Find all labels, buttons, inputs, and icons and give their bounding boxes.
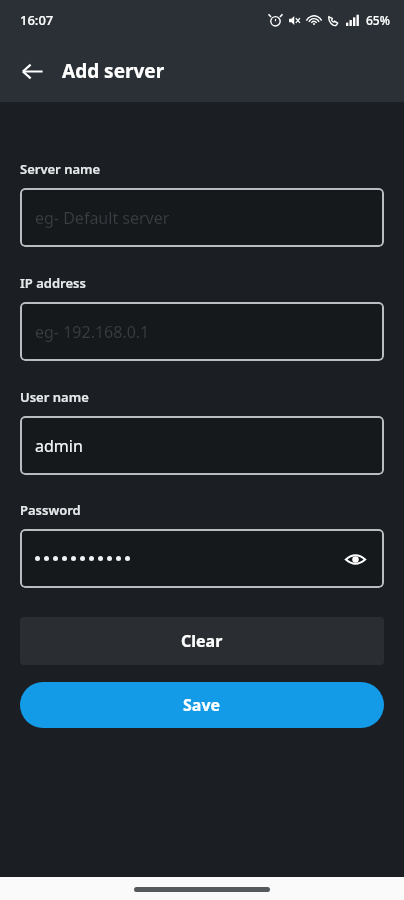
staticText: Password: [20, 501, 81, 519]
staticText: User name: [20, 388, 89, 406]
button[interactable]: admin: [20, 416, 384, 475]
button[interactable]: Back: [12, 51, 52, 91]
button[interactable]: Save: [20, 682, 384, 728]
button[interactable]: eg- 192.168.0.1: [20, 302, 384, 361]
staticText: IP address: [20, 274, 86, 292]
staticText: admin: [35, 435, 83, 457]
button[interactable]: eg- Default server: [20, 188, 384, 247]
staticText: Clear: [181, 630, 223, 652]
button[interactable]: Clear: [20, 617, 384, 665]
staticText: Server name: [20, 160, 101, 178]
button[interactable]: Show password: [20, 529, 384, 588]
staticText: Add server: [62, 58, 165, 84]
staticText: 65%: [366, 12, 390, 28]
button[interactable]: Show password: [337, 541, 373, 577]
staticText: eg- 192.168.0.1: [35, 321, 150, 343]
staticText: Save: [183, 694, 221, 716]
staticText: 16:07: [20, 11, 54, 29]
staticText: eg- Default server: [35, 207, 170, 229]
